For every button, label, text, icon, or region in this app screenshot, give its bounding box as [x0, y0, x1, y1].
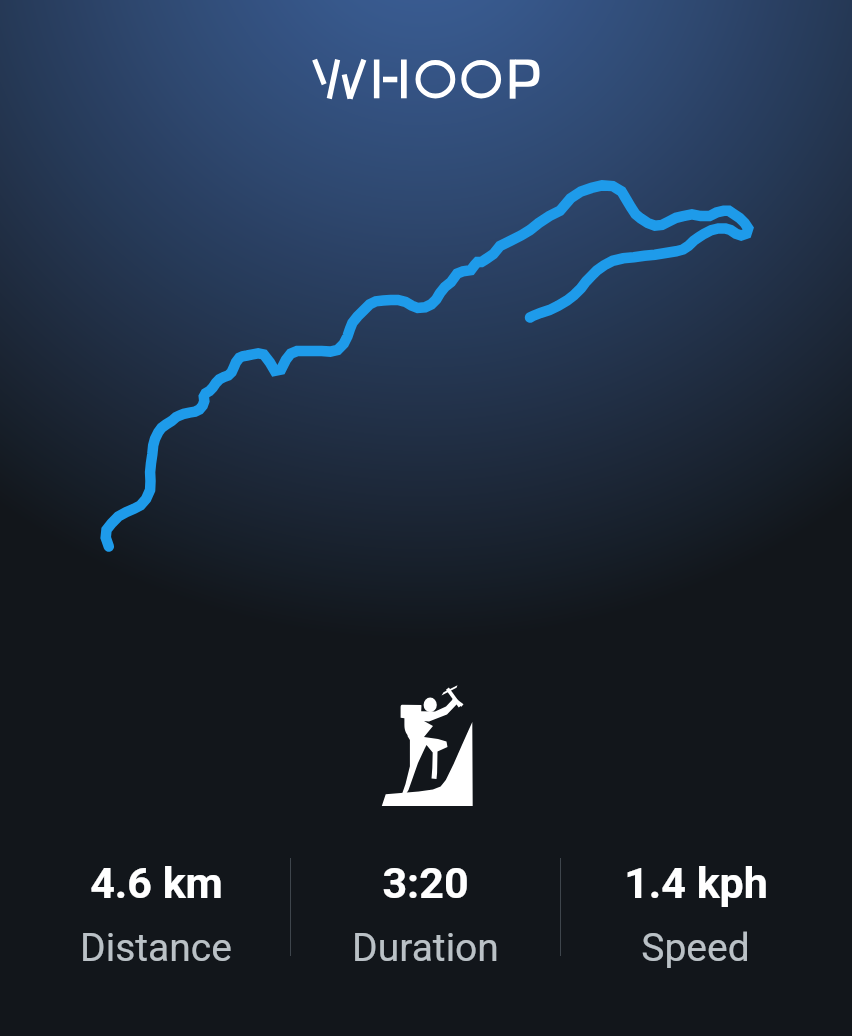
staticText: Duration: [352, 925, 499, 968]
staticText: Distance: [80, 925, 232, 968]
button[interactable]: 3:20: [291, 858, 560, 968]
button[interactable]: WHOOP: [310, 52, 542, 94]
staticText: 3:20: [382, 858, 469, 908]
staticText: 1.4 kph: [624, 858, 768, 908]
staticText: 4.6 km: [90, 858, 223, 908]
button[interactable]: 4.6 km: [22, 858, 290, 968]
staticText: Speed: [641, 925, 750, 968]
button[interactable]: 1.4 kph: [561, 858, 830, 968]
